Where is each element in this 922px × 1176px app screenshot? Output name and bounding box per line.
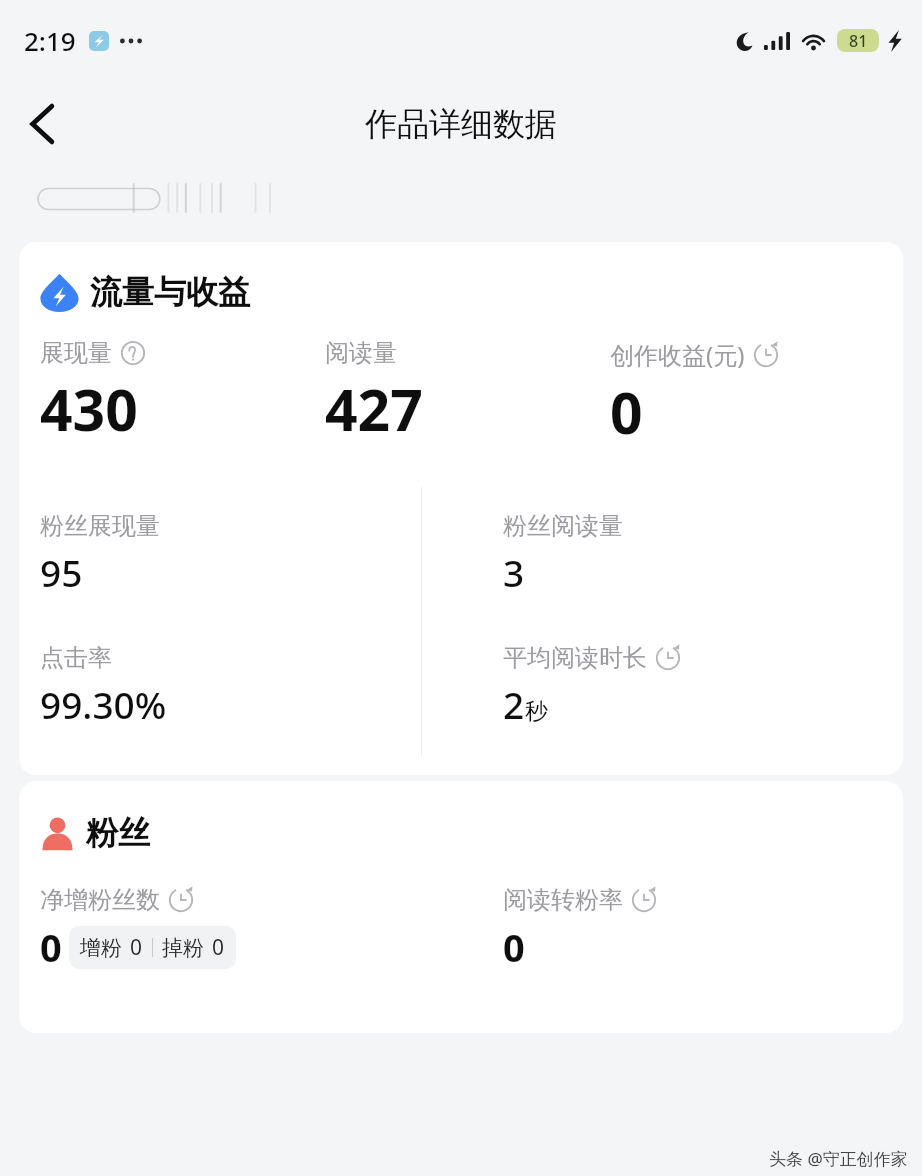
- staticText: 头条 @守正创作家: [769, 1147, 908, 1170]
- staticText: 增粉: [80, 935, 122, 961]
- staticText: 点击率: [40, 643, 112, 673]
- staticText: 3: [503, 547, 525, 597]
- button[interactable]: Back: [12, 93, 74, 155]
- staticText: 427: [325, 370, 423, 448]
- staticText: 粉丝阅读量: [503, 511, 623, 541]
- button[interactable]: 流量与收益: [19, 242, 903, 775]
- staticText: 99.30%: [40, 679, 167, 729]
- staticText: 0: [130, 933, 143, 962]
- staticText: 95: [40, 547, 83, 597]
- staticText: 阅读量: [325, 338, 397, 368]
- staticText: 流量与收益: [90, 272, 250, 312]
- staticText: 0: [503, 921, 525, 973]
- staticText: 掉粉: [162, 935, 204, 961]
- staticText: 430: [40, 370, 138, 448]
- staticText: 2:19: [24, 23, 76, 58]
- staticText: 0: [610, 373, 643, 451]
- staticText: 展现量: [40, 338, 112, 368]
- staticText: 净增粉丝数: [40, 885, 160, 915]
- staticText: 创作收益(元): [610, 338, 745, 371]
- staticText: 粉丝: [86, 813, 150, 853]
- staticText: 0: [40, 921, 62, 973]
- staticText: 粉丝展现量: [40, 511, 160, 541]
- staticText: 平均阅读时长: [503, 643, 647, 673]
- staticText: 秒: [525, 697, 548, 726]
- staticText: 作品详细数据: [365, 104, 557, 144]
- staticText: 0: [212, 933, 225, 962]
- button[interactable]: 粉丝: [19, 781, 903, 1033]
- staticText: 2: [503, 679, 525, 729]
- staticText: 阅读转粉率: [503, 885, 623, 915]
- staticText: 81: [849, 30, 868, 52]
